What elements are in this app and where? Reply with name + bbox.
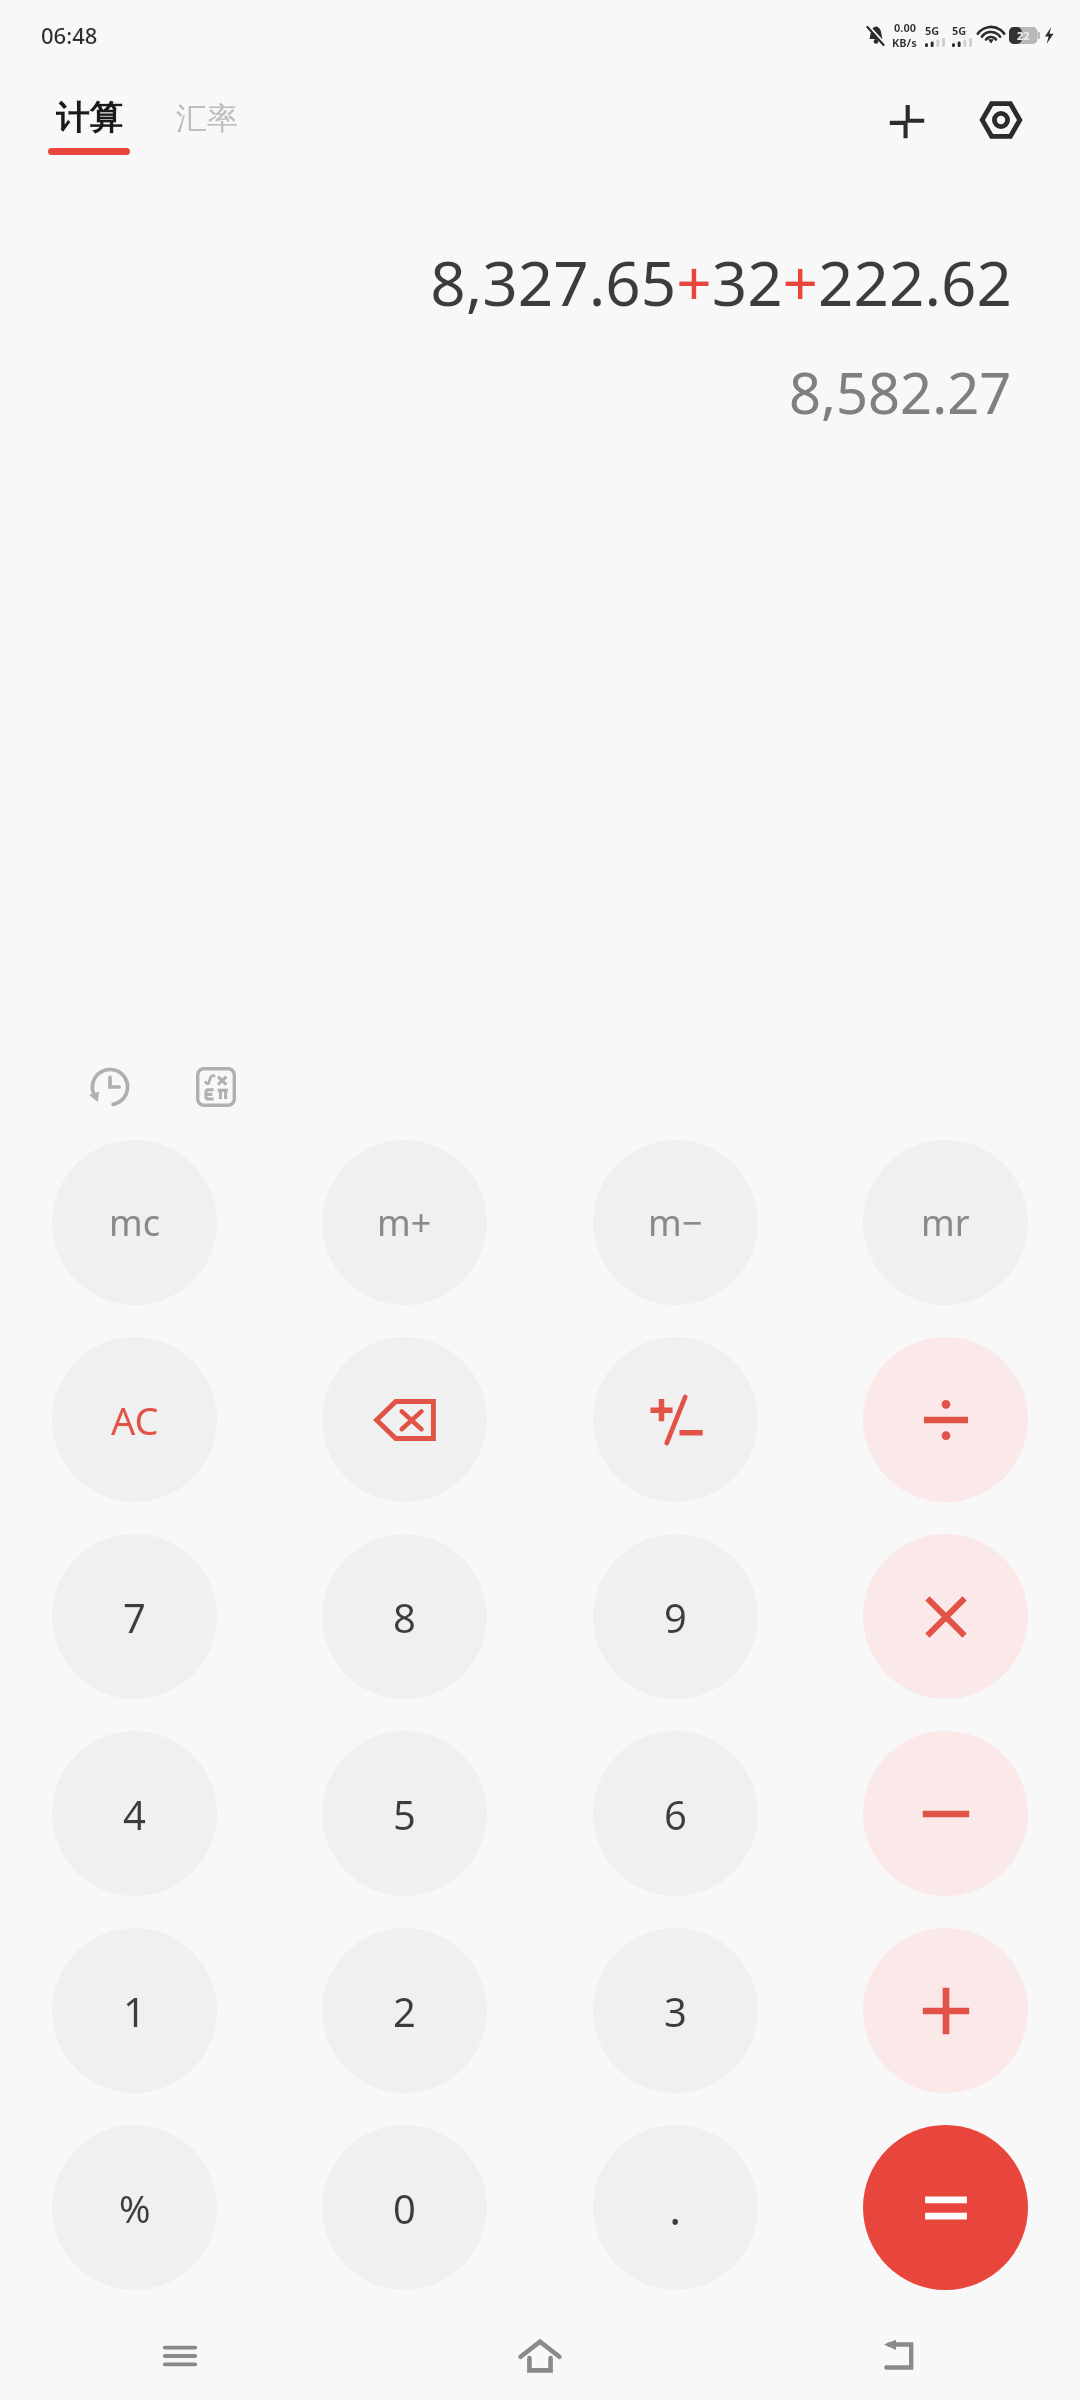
button[interactable]: 汇率 — [170, 107, 244, 146]
staticText: 1 — [123, 1984, 146, 2038]
button[interactable]: Plus minus — [593, 1337, 758, 1502]
staticText: 5 — [393, 1787, 416, 1841]
staticText: 0 — [393, 2181, 416, 2235]
button[interactable]: 2 — [322, 1928, 487, 2093]
button[interactable]: Home — [360, 2312, 720, 2400]
button[interactable]: Delete — [322, 1337, 487, 1502]
button[interactable]: mc — [52, 1140, 217, 1305]
button[interactable]: Minus — [863, 1731, 1028, 1896]
staticText: m+ — [377, 1198, 432, 1247]
button[interactable]: Back — [720, 2312, 1080, 2400]
staticText: 6 — [664, 1787, 687, 1841]
button[interactable]: % — [52, 2125, 217, 2290]
button[interactable]: 1 — [52, 1928, 217, 2093]
staticText: 3 — [664, 1984, 687, 2038]
button[interactable]: Floating window — [876, 89, 938, 151]
staticText: 8,327.65+32+222.62 — [430, 240, 1012, 324]
staticText: . — [669, 2176, 682, 2239]
button[interactable]: History — [78, 1055, 142, 1119]
button[interactable]: 9 — [593, 1534, 758, 1699]
staticText: AC — [111, 1394, 159, 1446]
staticText: 汇率 — [176, 99, 238, 138]
staticText: 06:48 — [41, 20, 98, 50]
button[interactable]: . — [593, 2125, 758, 2290]
button[interactable]: Equals — [863, 2125, 1028, 2290]
button[interactable]: m+ — [322, 1140, 487, 1305]
staticText: mr — [921, 1198, 970, 1247]
button[interactable]: 6 — [593, 1731, 758, 1896]
button[interactable]: 8 — [322, 1534, 487, 1699]
button[interactable]: Scientific calculator — [184, 1055, 248, 1119]
staticText: 0.00 — [894, 20, 916, 35]
staticText: 7 — [123, 1590, 146, 1644]
staticText: 8 — [393, 1590, 416, 1644]
button[interactable]: 3 — [593, 1928, 758, 2093]
button[interactable]: 4 — [52, 1731, 217, 1896]
staticText: 4 — [123, 1787, 146, 1841]
staticText: mc — [109, 1198, 160, 1247]
staticText: m− — [648, 1198, 703, 1247]
button[interactable]: Multiply — [863, 1534, 1028, 1699]
staticText: 2 — [393, 1984, 416, 2038]
button[interactable]: 5 — [322, 1731, 487, 1896]
staticText: 22 — [1017, 28, 1030, 43]
button[interactable]: Plus — [863, 1928, 1028, 2093]
button[interactable]: mr — [863, 1140, 1028, 1305]
button[interactable]: AC — [52, 1337, 217, 1502]
button[interactable]: 0 — [322, 2125, 487, 2290]
staticText: 9 — [664, 1590, 687, 1644]
staticText: 计算 — [56, 97, 122, 139]
staticText: % — [119, 2182, 151, 2234]
button[interactable]: Recents — [0, 2312, 360, 2400]
staticText: KB/s — [892, 35, 917, 50]
button[interactable]: m− — [593, 1140, 758, 1305]
button[interactable]: Divide — [863, 1337, 1028, 1502]
staticText: 5G — [925, 23, 940, 38]
staticText: 5G — [952, 23, 967, 38]
button[interactable]: 计算 — [44, 91, 134, 161]
button[interactable]: Settings — [970, 89, 1032, 151]
staticText: 8,582.27 — [789, 354, 1012, 430]
button[interactable]: 7 — [52, 1534, 217, 1699]
